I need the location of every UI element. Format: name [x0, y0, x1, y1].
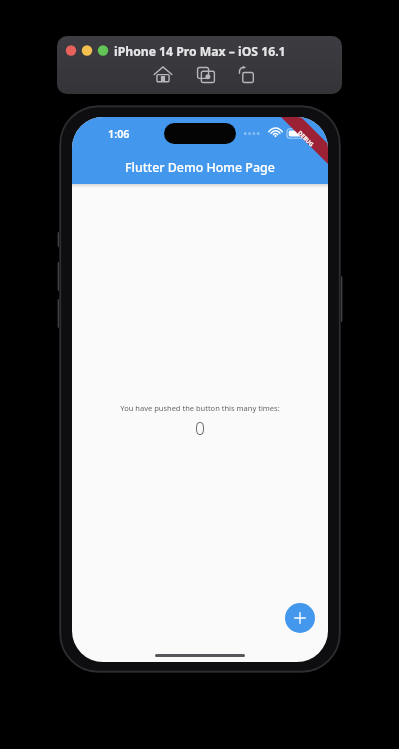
staticText: DEBUG	[296, 129, 316, 149]
staticText: Flutter Demo Home Page	[125, 159, 275, 176]
button[interactable]: Increment	[285, 603, 315, 633]
staticText: 0	[195, 416, 205, 440]
staticText: iPhone 14 Pro Max – iOS 16.1	[114, 43, 286, 60]
staticText: 1:06	[108, 126, 130, 141]
staticText: You have pushed the button this many tim…	[120, 403, 280, 413]
